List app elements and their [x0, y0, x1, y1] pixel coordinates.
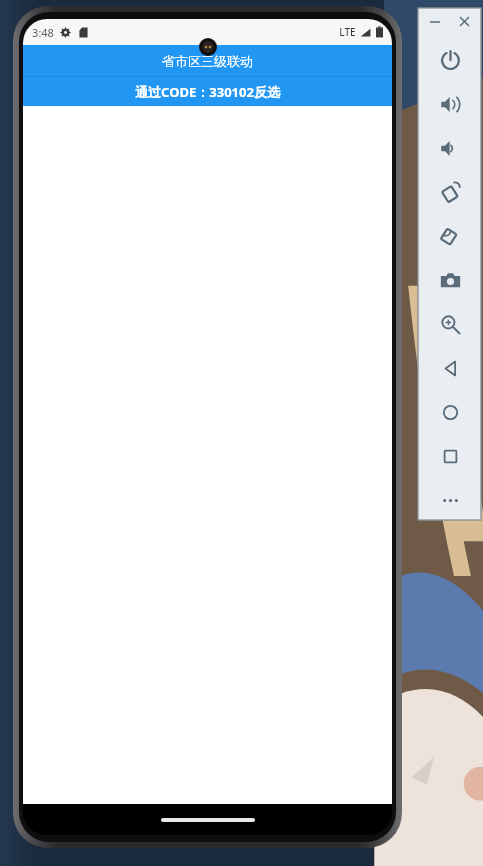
button[interactable]: Minimize [426, 13, 443, 30]
button[interactable]: 通过CODE：330102反选 [23, 77, 392, 106]
button[interactable]: More [431, 481, 469, 519]
button[interactable]: Take screenshot [431, 261, 469, 299]
staticText: 省市区三级联动 [162, 53, 253, 69]
button[interactable]: Home [161, 818, 255, 822]
button[interactable]: Home [431, 393, 469, 431]
staticText: 通过CODE：330102反选 [135, 83, 280, 101]
button[interactable]: Volume up [431, 85, 469, 123]
staticText: 3:48 [32, 25, 54, 40]
button[interactable]: Zoom [431, 305, 469, 343]
button[interactable]: 省市区三级联动 [23, 45, 392, 76]
button[interactable]: Close [456, 13, 473, 30]
button[interactable]: Rotate left [431, 173, 469, 211]
staticText: LTE [339, 25, 356, 39]
button[interactable]: Power [431, 41, 469, 79]
button[interactable]: Overview [431, 437, 469, 475]
button[interactable]: Rotate right [431, 217, 469, 255]
button[interactable]: Back [431, 349, 469, 387]
button[interactable]: Volume down [431, 129, 469, 167]
